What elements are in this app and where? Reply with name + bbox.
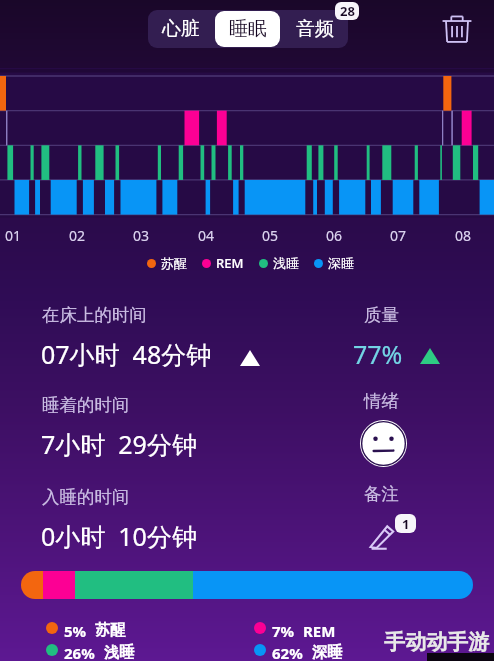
staticText: 77% — [353, 337, 403, 371]
staticText: 06 — [321, 226, 347, 245]
staticText: 7小时 29分钟 — [41, 427, 197, 461]
button[interactable]: 睡眠 — [215, 11, 280, 47]
staticText: REM — [303, 621, 336, 641]
staticText: 深睡 — [328, 255, 354, 271]
staticText: 0小时 10分钟 — [41, 519, 197, 553]
staticText: 音频 — [296, 17, 334, 41]
staticText: REM — [216, 254, 244, 272]
staticText: 备注 — [364, 483, 399, 505]
staticText: 62% — [272, 643, 303, 661]
staticText: 02 — [64, 226, 90, 245]
staticText: 1 — [402, 515, 410, 533]
staticText: 深睡 — [312, 643, 342, 661]
staticText: 苏醒 — [161, 255, 187, 271]
staticText: 质量 — [364, 304, 399, 326]
staticText: 05 — [257, 226, 283, 245]
button[interactable]: Delete — [438, 10, 476, 48]
staticText: 手动动手游 — [384, 629, 489, 655]
staticText: 在床上的时间 — [42, 304, 147, 326]
staticText: 7% — [272, 621, 295, 641]
button[interactable]: 心脏 — [149, 11, 213, 47]
staticText: 苏醒 — [95, 621, 125, 640]
staticText: 睡眠 — [229, 17, 267, 41]
staticText: 01 — [0, 226, 26, 245]
staticText: 浅睡 — [104, 643, 134, 661]
staticText: 浅睡 — [273, 255, 299, 271]
button[interactable]: 音频 — [282, 11, 347, 47]
staticText: 07 — [385, 226, 411, 245]
staticText: 04 — [193, 226, 219, 245]
staticText: 入睡的时间 — [42, 486, 130, 508]
staticText: 情绪 — [364, 390, 399, 412]
staticText: 07小时 48分钟 — [41, 337, 212, 371]
staticText: 心脏 — [162, 17, 200, 41]
staticText: 08 — [450, 226, 476, 245]
staticText: 睡着的时间 — [42, 394, 130, 416]
staticText: 5% — [64, 621, 87, 641]
staticText: 28 — [340, 2, 355, 20]
staticText: 26% — [64, 643, 95, 661]
staticText: 03 — [128, 226, 154, 245]
